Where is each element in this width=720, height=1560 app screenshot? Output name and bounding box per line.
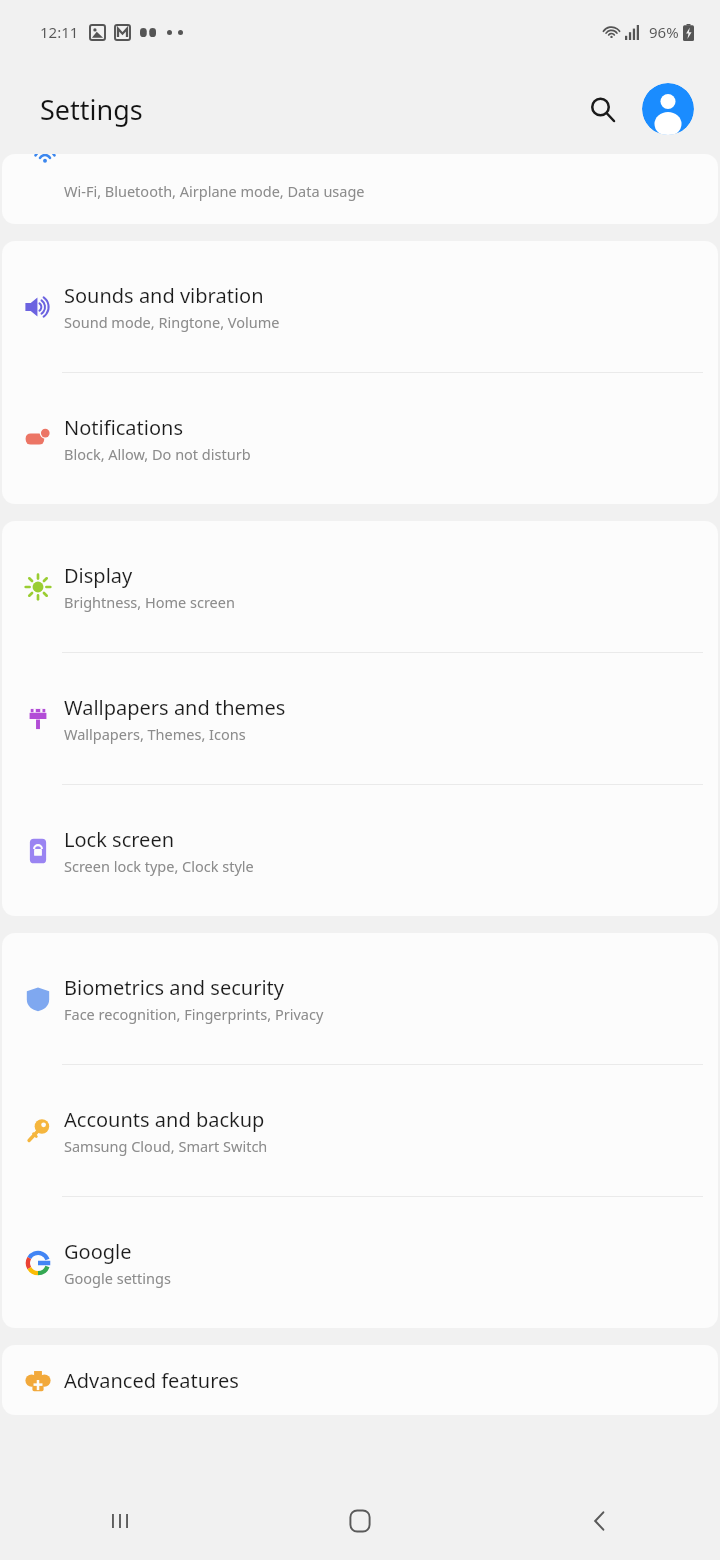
button[interactable]: Account <box>642 83 694 135</box>
staticText: Samsung Cloud, Smart Switch <box>64 1136 268 1156</box>
staticText: Lock screen <box>64 826 175 853</box>
staticText: 96% <box>649 22 679 42</box>
button[interactable]: Notifications <box>2 373 718 504</box>
button[interactable]: Lock screen <box>2 785 718 916</box>
staticText: Settings <box>40 91 143 128</box>
staticText: Biometrics and security <box>64 974 284 1001</box>
staticText: Wallpapers, Themes, Icons <box>64 724 246 744</box>
staticText: Block, Allow, Do not disturb <box>64 444 251 464</box>
staticText: Wallpapers and themes <box>64 694 286 721</box>
button[interactable]: Biometrics and security <box>2 933 718 1064</box>
button[interactable]: Wallpapers and themes <box>2 653 718 784</box>
staticText: Face recognition, Fingerprints, Privacy <box>64 1004 324 1024</box>
staticText: Sounds and vibration <box>64 282 264 309</box>
button[interactable]: Search <box>578 85 626 133</box>
staticText: 12:11 <box>40 22 79 42</box>
button[interactable]: Sounds and vibration <box>2 241 718 372</box>
button[interactable]: Accounts and backup <box>2 1065 718 1196</box>
button[interactable]: Google <box>2 1197 718 1328</box>
button[interactable]: Display <box>2 521 718 652</box>
button[interactable]: Advanced features <box>2 1345 718 1415</box>
button[interactable]: Home <box>240 1482 480 1560</box>
staticText: Google <box>64 1238 132 1265</box>
button[interactable]: Recents <box>0 1482 240 1560</box>
staticText: Wi-Fi, Bluetooth, Airplane mode, Data us… <box>64 181 365 201</box>
staticText: Brightness, Home screen <box>64 592 235 612</box>
staticText: Google settings <box>64 1268 171 1288</box>
staticText: Notifications <box>64 414 183 441</box>
staticText: Sound mode, Ringtone, Volume <box>64 312 280 332</box>
button[interactable]: Back <box>480 1482 720 1560</box>
staticText: Screen lock type, Clock style <box>64 856 254 876</box>
button[interactable]: Wi-Fi, Bluetooth, Airplane mode, Data us… <box>2 154 718 224</box>
staticText: Display <box>64 562 133 589</box>
staticText: Advanced features <box>64 1367 239 1394</box>
staticText: Accounts and backup <box>64 1106 265 1133</box>
